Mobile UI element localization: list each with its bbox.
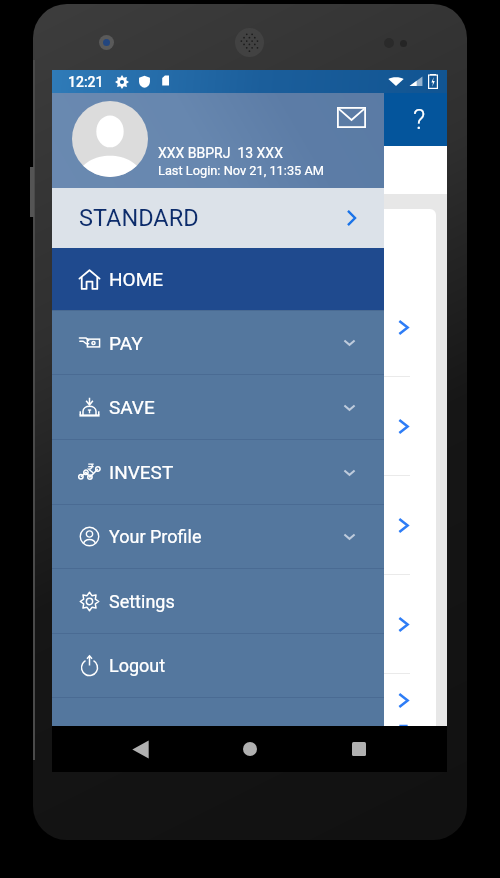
button[interactable]: Settings: [52, 569, 384, 633]
button[interactable]: [62, 476, 436, 574]
staticText: 12:21: [68, 74, 104, 90]
staticText: ?: [413, 104, 426, 136]
button[interactable]: STANDARD: [52, 188, 384, 248]
button[interactable]: Help: [399, 100, 439, 140]
staticText: Settings: [109, 591, 175, 612]
staticText: PAY: [109, 332, 143, 354]
staticText: HOME: [109, 268, 164, 290]
button[interactable]: [62, 278, 436, 376]
staticText: XXX BBPRJ 13 XXX: [158, 145, 283, 161]
button[interactable]: INVEST: [52, 440, 384, 504]
button[interactable]: Your Profile: [52, 505, 384, 568]
staticText: Last Login: Nov 21, 11:35 AM: [158, 163, 324, 178]
button[interactable]: Back: [118, 727, 162, 771]
button[interactable]: Home: [228, 727, 272, 771]
button[interactable]: Messages: [331, 97, 371, 137]
staticText: INVEST: [109, 461, 174, 483]
button[interactable]: SAVE: [52, 375, 384, 439]
staticText: STANDARD: [79, 204, 199, 232]
staticText: Logout: [109, 655, 166, 676]
button[interactable]: [62, 377, 436, 475]
button[interactable]: [62, 674, 436, 726]
staticText: Your Profile: [109, 526, 202, 547]
button[interactable]: [62, 575, 436, 673]
button[interactable]: Logout: [52, 634, 384, 697]
staticText: SAVE: [109, 396, 155, 418]
button[interactable]: PAY: [52, 311, 384, 374]
button[interactable]: HOME: [52, 248, 384, 310]
button[interactable]: Recents: [337, 727, 381, 771]
